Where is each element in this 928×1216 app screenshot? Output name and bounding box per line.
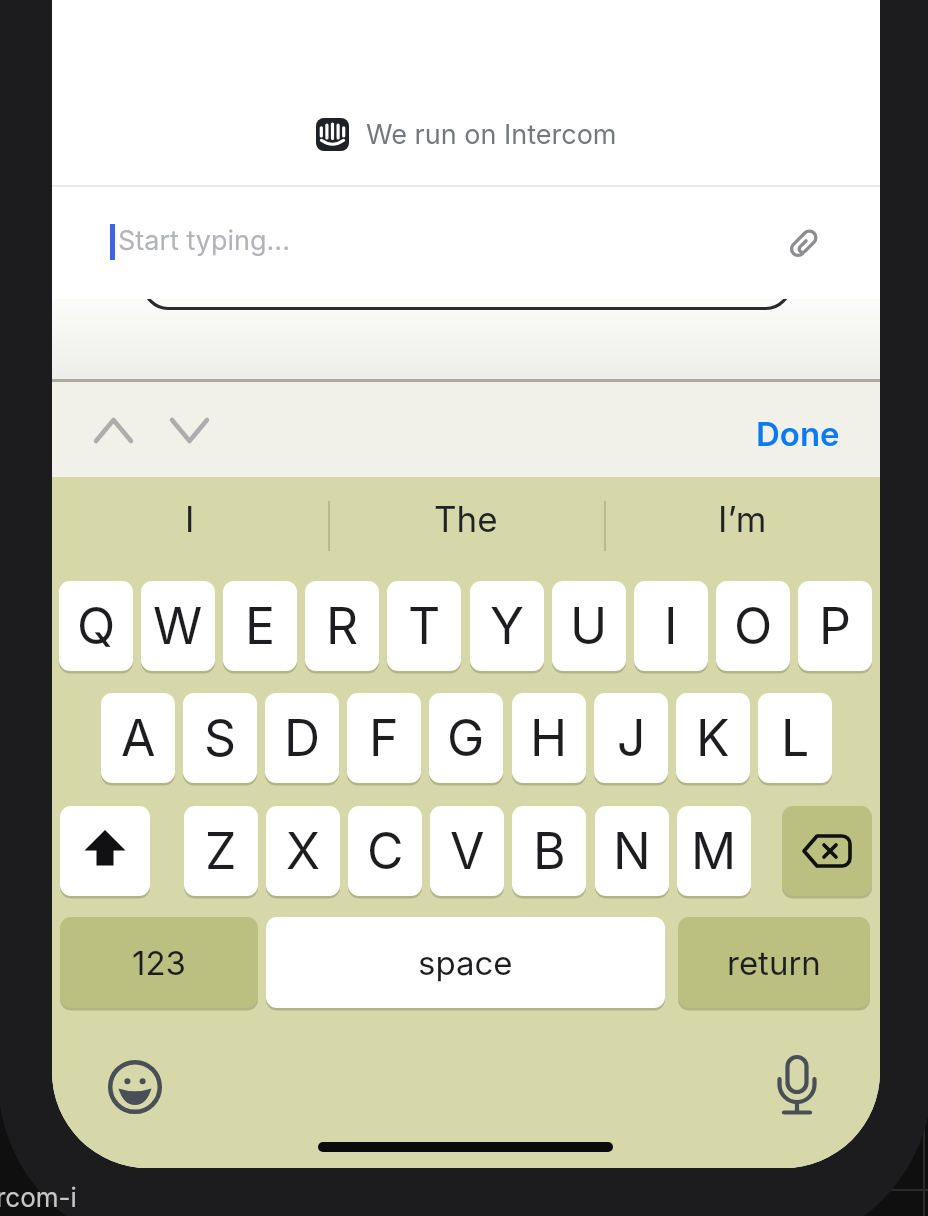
staticText: L <box>781 708 810 768</box>
button[interactable] <box>60 806 150 896</box>
button[interactable] <box>769 1055 825 1117</box>
staticText: E <box>245 596 276 656</box>
button[interactable]: F <box>347 693 421 783</box>
staticText: P <box>819 596 851 656</box>
button[interactable]: We run on Intercom <box>52 118 880 151</box>
staticText: Q <box>77 596 116 656</box>
staticText: F <box>369 708 399 768</box>
button[interactable]: Z <box>184 806 258 896</box>
staticText: V <box>450 821 485 881</box>
staticText: T <box>408 596 441 656</box>
button[interactable] <box>92 416 216 444</box>
staticText: R <box>326 596 359 656</box>
staticText: 123 <box>132 943 186 983</box>
staticText: Y <box>490 596 524 656</box>
staticText: I <box>664 596 678 656</box>
button[interactable] <box>108 1060 162 1114</box>
staticText: A <box>121 708 156 768</box>
button[interactable]: N <box>595 806 669 896</box>
staticText: D <box>284 708 321 768</box>
staticText: rcom-i <box>0 1182 77 1213</box>
button[interactable]: W <box>141 581 215 671</box>
button[interactable]: L <box>758 693 832 783</box>
staticText: X <box>286 821 321 881</box>
button[interactable]: O <box>716 581 790 671</box>
button[interactable]: I <box>52 477 328 561</box>
staticText: The <box>434 498 498 540</box>
button[interactable]: C <box>348 806 422 896</box>
button[interactable]: Y <box>470 581 544 671</box>
button[interactable]: Q <box>59 581 133 671</box>
staticText: Start typing... <box>118 224 290 257</box>
button[interactable]: S <box>183 693 257 783</box>
staticText: H <box>530 708 568 768</box>
button[interactable]: B <box>512 806 586 896</box>
staticText: S <box>204 708 237 768</box>
button[interactable]: J <box>594 693 668 783</box>
staticText: Z <box>205 821 237 881</box>
staticText: M <box>691 821 737 881</box>
staticText: C <box>367 821 404 881</box>
button[interactable]: T <box>387 581 461 671</box>
button[interactable] <box>782 806 872 896</box>
button[interactable]: U <box>552 581 626 671</box>
button[interactable]: Start typing... <box>52 187 880 299</box>
staticText: W <box>153 596 203 656</box>
staticText: I’m <box>718 498 767 540</box>
staticText: U <box>570 596 608 656</box>
button[interactable]: space <box>266 917 665 1008</box>
button[interactable]: X <box>266 806 340 896</box>
button[interactable]: 123 <box>60 917 258 1008</box>
button[interactable]: I’m <box>604 477 880 561</box>
button[interactable]: K <box>676 693 750 783</box>
button[interactable] <box>786 227 820 261</box>
button[interactable]: V <box>430 806 504 896</box>
staticText: O <box>734 596 773 656</box>
staticText: I <box>185 498 195 540</box>
staticText: N <box>613 821 651 881</box>
button[interactable]: Done <box>796 410 880 450</box>
button[interactable]: M <box>677 806 751 896</box>
button[interactable]: I <box>634 581 708 671</box>
staticText: G <box>447 708 485 768</box>
staticText: Done <box>756 414 840 454</box>
button[interactable]: A <box>101 693 175 783</box>
button[interactable]: The <box>328 477 604 561</box>
staticText: space <box>418 943 513 983</box>
button[interactable]: H <box>512 693 586 783</box>
staticText: return <box>727 943 821 983</box>
button[interactable]: D <box>265 693 339 783</box>
button[interactable]: P <box>798 581 872 671</box>
button[interactable]: return <box>678 917 870 1008</box>
staticText: B <box>533 821 566 881</box>
staticText: J <box>617 708 646 768</box>
staticText: We run on Intercom <box>366 118 617 151</box>
button[interactable]: R <box>305 581 379 671</box>
button[interactable]: E <box>223 581 297 671</box>
button[interactable]: G <box>429 693 503 783</box>
staticText: K <box>696 708 730 768</box>
